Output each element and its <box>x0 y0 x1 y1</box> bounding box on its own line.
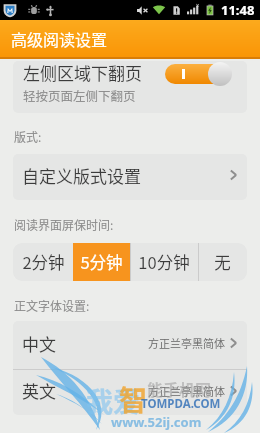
button[interactable]: 无 <box>198 243 247 281</box>
staticText: 智 <box>119 379 148 420</box>
staticText: 英文 <box>22 378 56 403</box>
button[interactable]: 左侧区域下翻页 <box>13 61 247 113</box>
staticText: www.52ij.com <box>111 413 202 431</box>
staticText: 11:48 <box>221 1 255 19</box>
staticText: 5分钟 <box>80 250 123 274</box>
button[interactable]: 10分钟 <box>130 243 198 281</box>
button[interactable]: 2分钟 <box>13 243 73 281</box>
staticText: 中文 <box>22 331 56 356</box>
staticText: 方正兰亭黑简体 <box>148 335 225 351</box>
staticText: 自定义版式设置 <box>22 163 141 188</box>
staticText: 无 <box>214 250 231 274</box>
staticText: 正文字体设置: <box>14 297 90 314</box>
staticText: 2分钟 <box>22 250 65 274</box>
button[interactable]: 中文 <box>13 321 247 369</box>
staticText: 能手机网 <box>147 377 212 400</box>
button[interactable]: 5分钟 <box>73 243 130 281</box>
button[interactable]: 自定义版式设置 <box>13 154 247 200</box>
staticText: 阅读界面屏保时间: <box>14 216 114 233</box>
staticText: 方正兰亭黑简体 <box>148 383 225 399</box>
staticText: 高级阅读设置 <box>11 27 108 50</box>
staticText: 轻按页面左侧下翻页 <box>23 86 136 104</box>
staticText: 我爱 <box>86 381 140 420</box>
staticText: TOMPDA.COM <box>141 396 221 412</box>
staticText: 版式: <box>14 128 42 145</box>
button[interactable]: Toggle left tap page down <box>165 62 232 86</box>
staticText: 左侧区域下翻页 <box>23 61 142 85</box>
staticText: 10分钟 <box>138 250 190 274</box>
button[interactable]: 英文 <box>13 370 247 415</box>
